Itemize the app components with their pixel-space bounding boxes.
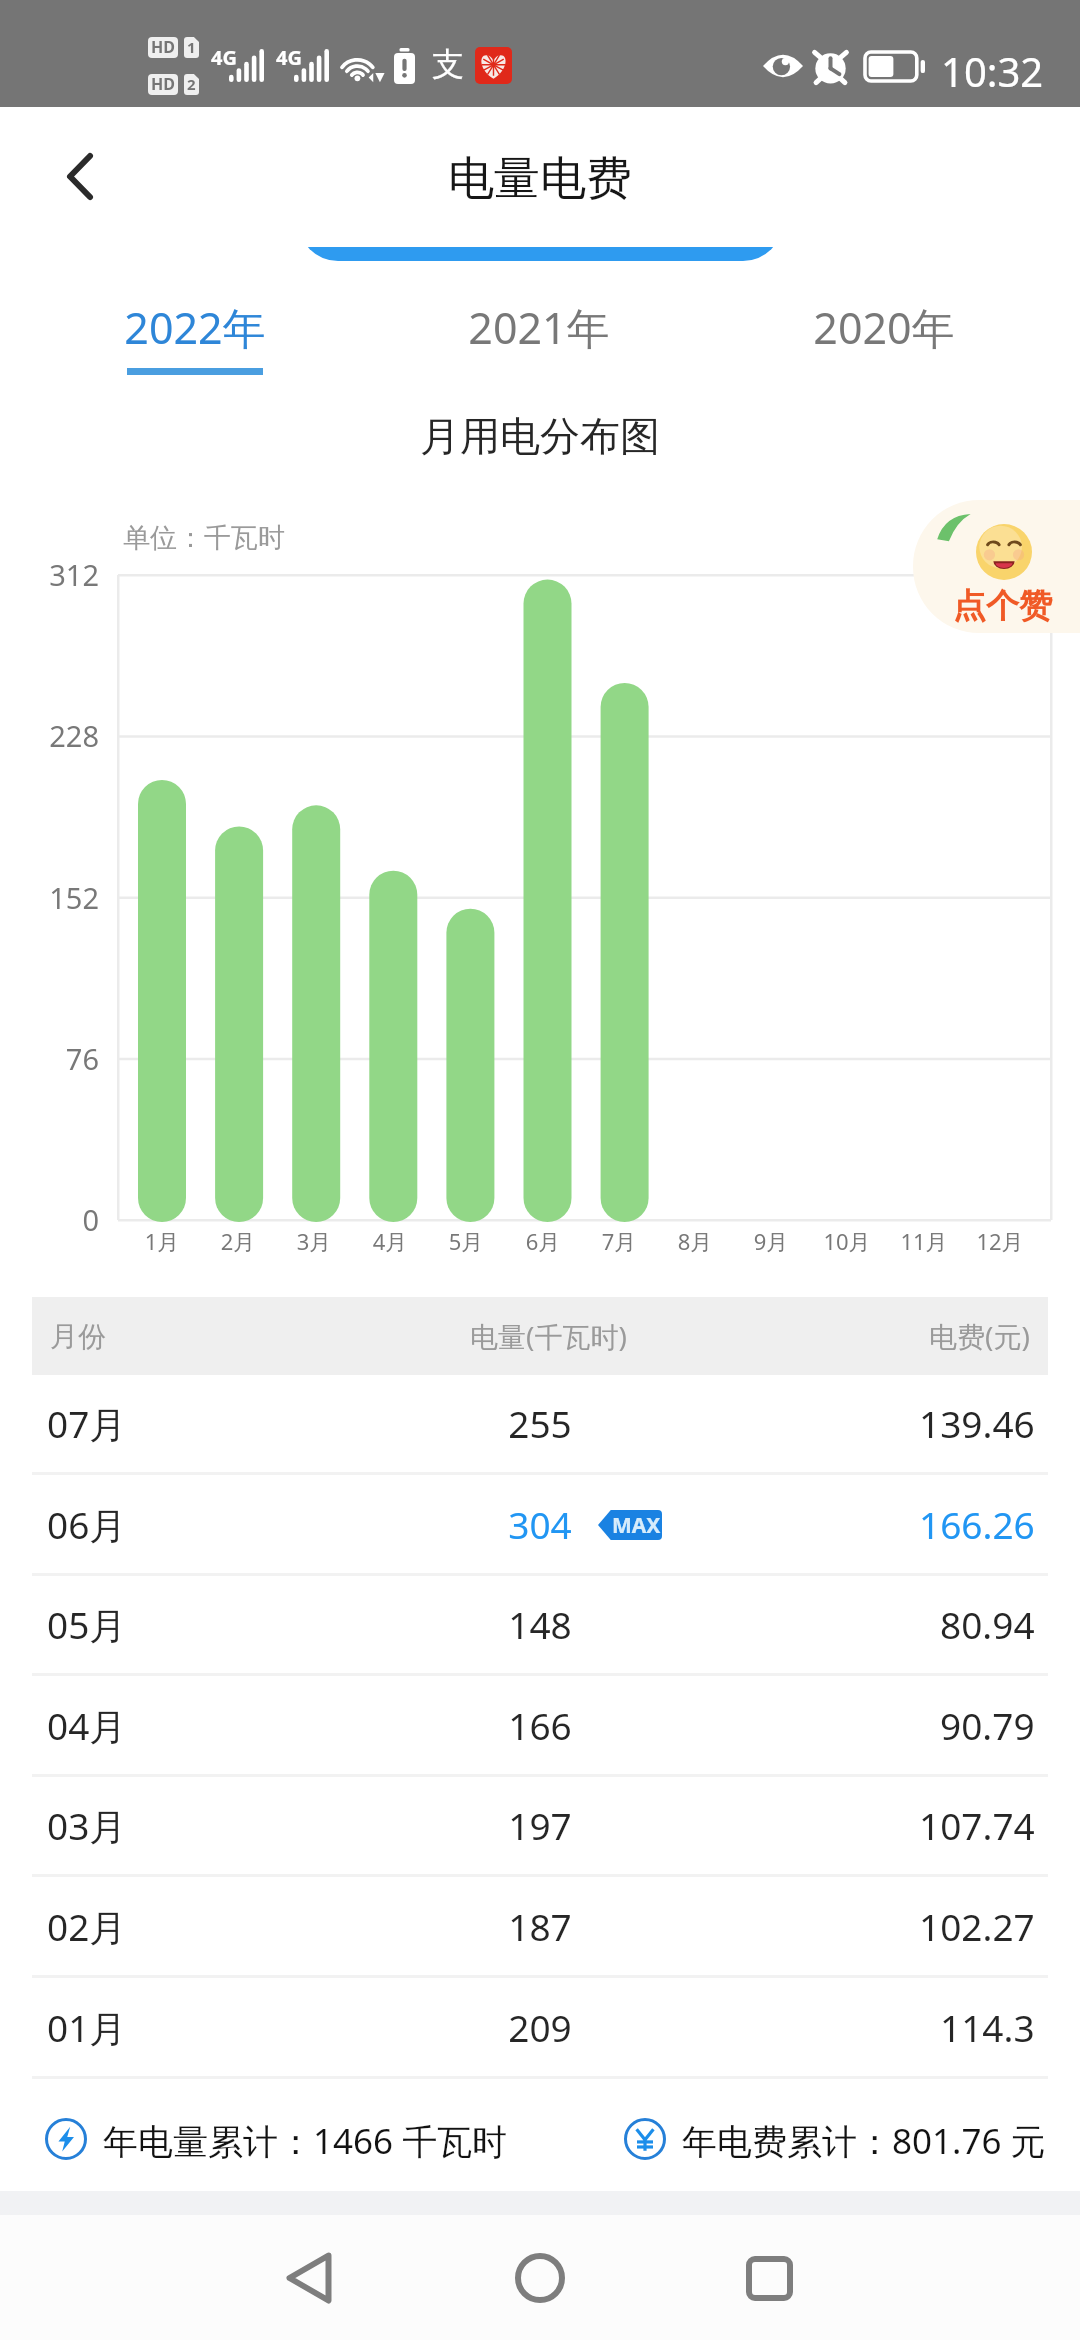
- staticText: 点个赞: [953, 585, 1052, 627]
- button[interactable]: 2020年: [774, 280, 994, 380]
- button[interactable]: 年电量累计：1466 千瓦时: [45, 2117, 508, 2161]
- staticText: 4G: [211, 44, 237, 71]
- staticText: 102.27: [919, 1901, 1035, 1951]
- staticText: 187: [390, 1901, 690, 1951]
- staticText: 166.26: [919, 1499, 1035, 1549]
- staticText: 电量电费: [0, 150, 1080, 208]
- staticText: 3月: [264, 1226, 364, 1256]
- button[interactable]: Back: [37, 133, 123, 219]
- staticText: 312: [0, 555, 99, 594]
- button[interactable]: Home: [480, 2234, 600, 2322]
- staticText: 7月: [569, 1226, 669, 1256]
- staticText: 10月: [797, 1226, 897, 1256]
- button[interactable]: Like: [913, 500, 1080, 633]
- staticText: 114.3: [940, 2002, 1035, 2052]
- staticText: 0: [0, 1200, 99, 1239]
- staticText: 166: [390, 1700, 690, 1750]
- staticText: 01月: [47, 2002, 127, 2053]
- staticText: 支: [432, 44, 464, 84]
- staticText: 05月: [47, 1599, 127, 1650]
- button[interactable]: Recents: [709, 2234, 829, 2322]
- staticText: 107.74: [919, 1800, 1035, 1850]
- staticText: 4G: [276, 44, 302, 71]
- button[interactable]: 2021年: [429, 280, 649, 380]
- staticText: 197: [390, 1800, 690, 1850]
- staticText: 02月: [47, 1901, 127, 1952]
- button[interactable]: 07月: [32, 1375, 1048, 1475]
- staticText: 2月: [188, 1226, 288, 1256]
- staticText: 2: [187, 74, 196, 94]
- staticText: HD: [151, 36, 175, 57]
- staticText: 电费(元): [929, 1317, 1030, 1355]
- staticText: 11月: [874, 1226, 974, 1256]
- button[interactable]: 2022年: [85, 280, 305, 380]
- button[interactable]: 04月: [32, 1677, 1048, 1777]
- staticText: 2022年: [85, 298, 305, 357]
- staticText: 5月: [416, 1226, 516, 1256]
- staticText: 06月: [47, 1499, 127, 1550]
- staticText: 04月: [47, 1700, 127, 1751]
- button[interactable]: 02月: [32, 1878, 1048, 1978]
- staticText: 8月: [645, 1226, 745, 1256]
- staticText: 年电费累计：801.76 元: [682, 2117, 1046, 2161]
- button[interactable]: Back: [249, 2234, 369, 2322]
- staticText: 12月: [950, 1226, 1050, 1256]
- staticText: 152: [0, 878, 99, 917]
- staticText: 月用电分布图: [0, 411, 1080, 461]
- staticText: 月份: [50, 1319, 106, 1354]
- staticText: 76: [0, 1039, 99, 1078]
- staticText: HD: [151, 73, 175, 94]
- staticText: 单位：千瓦时: [123, 521, 285, 555]
- staticText: 4月: [340, 1226, 440, 1256]
- button[interactable]: 06月: [32, 1476, 1048, 1576]
- staticText: 2021年: [429, 298, 649, 357]
- staticText: 1: [187, 37, 196, 57]
- staticText: 139.46: [919, 1398, 1035, 1448]
- staticText: 6月: [493, 1226, 593, 1256]
- button[interactable]: 03月: [32, 1777, 1048, 1877]
- staticText: 07月: [47, 1398, 127, 1449]
- staticText: 9月: [721, 1226, 821, 1256]
- staticText: MAX: [612, 1511, 661, 1540]
- staticText: 10:32: [941, 44, 1044, 98]
- staticText: 80.94: [940, 1599, 1035, 1649]
- staticText: 电量(千瓦时): [470, 1317, 627, 1355]
- staticText: 2020年: [774, 298, 994, 357]
- button[interactable]: 01月: [32, 1979, 1048, 2079]
- staticText: 304: [390, 1499, 690, 1549]
- staticText: 年电量累计：1466 千瓦时: [103, 2117, 508, 2161]
- button[interactable]: 年电费累计：801.76 元: [624, 2117, 1046, 2161]
- staticText: 209: [390, 2002, 690, 2052]
- staticText: 1月: [112, 1226, 212, 1256]
- button[interactable]: 05月: [32, 1576, 1048, 1676]
- staticText: 255: [390, 1398, 690, 1448]
- staticText: 148: [390, 1599, 690, 1649]
- staticText: 90.79: [940, 1700, 1035, 1750]
- staticText: 03月: [47, 1800, 127, 1851]
- staticText: 228: [0, 716, 99, 755]
